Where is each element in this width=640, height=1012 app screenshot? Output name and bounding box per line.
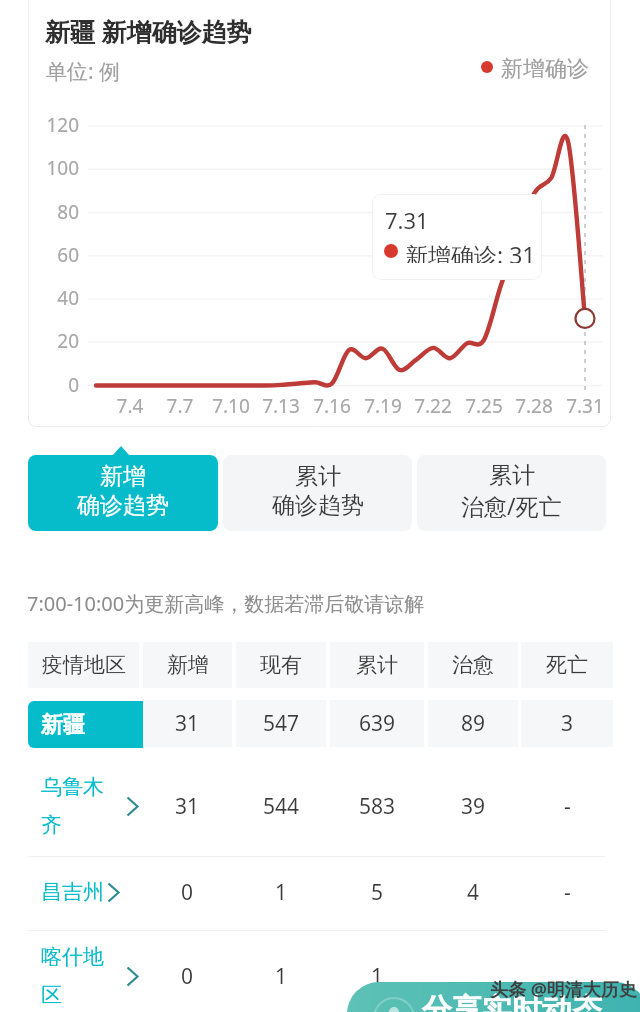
staticText: 0 (181, 962, 194, 991)
staticText: 20 (0, 328, 79, 354)
staticText: 639 (359, 709, 396, 738)
staticText: 累计 (489, 461, 535, 490)
staticText: 新疆 (41, 711, 85, 739)
staticText: 7.31 (385, 205, 429, 235)
staticText: 0 (181, 878, 194, 907)
staticText: 确诊趋势 (272, 491, 364, 520)
button[interactable]: 新增 (28, 455, 218, 531)
staticText: 死亡 (546, 652, 588, 678)
button[interactable]: 分享实时动态 (347, 982, 640, 1012)
staticText: 39 (461, 792, 486, 821)
staticText: 1 (275, 878, 288, 907)
staticText: 7:00-10:00为更新高峰，数据若滞后敬请谅解 (27, 590, 425, 617)
staticText: 7.4 (100, 393, 160, 419)
staticText: 新增 (167, 652, 209, 678)
staticText: 7.13 (251, 393, 311, 419)
staticText: 分享实时动态 (422, 991, 602, 1012)
staticText: 7.19 (353, 393, 413, 419)
staticText: 治愈 (452, 652, 494, 678)
button[interactable]: 乌鲁木齐 (28, 760, 613, 852)
staticText: 31 (175, 792, 200, 821)
staticText: 7.25 (454, 393, 514, 419)
staticText: 31 (175, 709, 200, 738)
staticText: 乌鲁木齐 (41, 774, 111, 838)
staticText: 80 (0, 199, 79, 225)
staticText: 7.31 (555, 393, 615, 419)
staticText: 疫情地区 (42, 652, 126, 678)
staticText: 7.10 (201, 393, 261, 419)
staticText: 现有 (260, 652, 302, 678)
staticText: 新疆 新增确诊趋势 (45, 14, 252, 48)
staticText: 40 (0, 285, 79, 311)
staticText: 60 (0, 242, 79, 268)
staticText: 确诊趋势 (77, 491, 169, 520)
staticText: 5 (371, 878, 384, 907)
staticText: - (564, 878, 571, 907)
staticText: 100 (0, 155, 79, 181)
button[interactable]: 累计 (417, 455, 606, 531)
staticText: 新增确诊 (501, 55, 589, 79)
staticText: 昌吉州 (41, 879, 104, 905)
staticText: 544 (263, 792, 300, 821)
staticText: 头条 @明清大历史 (490, 977, 637, 1002)
staticText: 1 (275, 962, 288, 991)
staticText: 583 (359, 792, 396, 821)
staticText: 7.7 (150, 393, 210, 419)
staticText: 89 (461, 709, 486, 738)
staticText: 单位: 例 (46, 57, 121, 86)
staticText: 7.22 (403, 393, 463, 419)
staticText: 120 (0, 112, 79, 138)
staticText: 喀什地区 (41, 944, 111, 1008)
staticText: 新增 (100, 462, 146, 491)
staticText: 治愈/死亡 (461, 490, 562, 521)
button[interactable] (28, 700, 613, 747)
staticText: 0 (0, 372, 79, 398)
staticText: 3 (561, 709, 574, 738)
button[interactable]: 喀什地区 (28, 936, 613, 1012)
staticText: 新增确诊: 31 (405, 239, 536, 263)
staticText: 547 (263, 709, 300, 738)
staticText: 7.16 (302, 393, 362, 419)
button[interactable]: 累计 (223, 455, 412, 531)
button[interactable]: 昌吉州 (28, 860, 613, 924)
staticText: 1 (371, 962, 384, 991)
staticText: 7.28 (504, 393, 564, 419)
staticText: - (564, 792, 571, 821)
staticText: 累计 (295, 462, 341, 491)
staticText: 累计 (356, 652, 398, 678)
staticText: 4 (467, 878, 480, 907)
